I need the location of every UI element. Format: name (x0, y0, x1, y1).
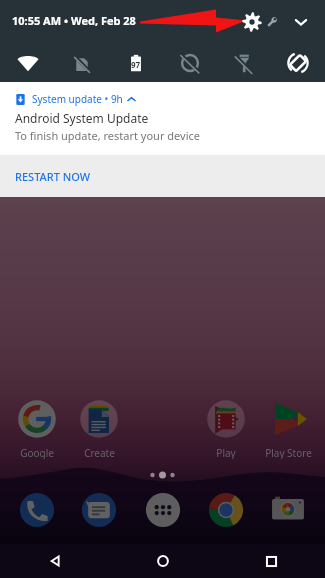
button[interactable]: Battery (109, 44, 163, 82)
staticText: Google (20, 446, 54, 459)
staticText: To finish update, restart your device (15, 128, 200, 143)
staticText: Create (84, 446, 115, 459)
staticText: 10:55 AM • Wed, Feb 28 (12, 13, 136, 28)
button[interactable]: All apps (141, 488, 185, 532)
staticText: Android System Update (15, 110, 149, 126)
button[interactable]: Wi-Fi (0, 44, 55, 82)
button[interactable]: Auto rotate (271, 44, 325, 82)
button[interactable]: Home (109, 544, 217, 578)
button[interactable]: Create (71, 399, 127, 459)
button[interactable]: Settings (241, 11, 263, 33)
button[interactable]: Play (198, 399, 254, 459)
button[interactable]: Flashlight (217, 44, 271, 82)
button[interactable]: SIM (55, 44, 109, 82)
button[interactable]: Do not disturb (163, 44, 217, 82)
staticText: System update • 9h (32, 92, 123, 106)
button[interactable]: Back (0, 544, 109, 578)
button[interactable]: RESTART NOW (0, 155, 325, 197)
staticText: Play (216, 446, 236, 459)
staticText: Play Store (265, 446, 312, 459)
staticText: 97 (131, 59, 141, 70)
staticText: RESTART NOW (15, 169, 91, 184)
button[interactable]: Phone (15, 488, 59, 532)
button[interactable]: Recents (217, 544, 325, 578)
button[interactable]: Chrome (204, 488, 248, 532)
button[interactable]: Messages (77, 488, 121, 532)
button[interactable]: Camera (266, 488, 310, 532)
button[interactable]: Collapse (293, 14, 309, 30)
button[interactable]: Play Store (260, 399, 316, 459)
button[interactable]: Google (9, 399, 65, 459)
